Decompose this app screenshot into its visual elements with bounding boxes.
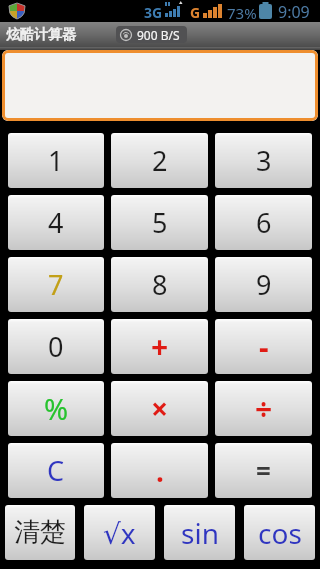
staticText: 9:09 [278, 1, 310, 23]
staticText: 清楚 [14, 516, 66, 549]
staticText: 73% [227, 3, 257, 23]
staticText: ÷ [255, 388, 273, 429]
button[interactable]: . [111, 443, 208, 498]
button[interactable]: ÷ [215, 381, 312, 436]
staticText: √x [103, 514, 136, 552]
staticText: cos [258, 514, 302, 552]
staticText: - [259, 326, 269, 367]
button[interactable]: 0 [8, 319, 104, 374]
staticText: 4 [48, 204, 64, 241]
staticText: % [44, 389, 69, 428]
staticText: 炫酷计算器 [6, 26, 76, 44]
button[interactable]: 900 B/S [116, 26, 187, 43]
button[interactable]: 4 [8, 195, 104, 250]
staticText: C [47, 452, 65, 489]
staticText: 0 [48, 328, 64, 365]
button[interactable]: 6 [215, 195, 312, 250]
button[interactable]: C [8, 443, 104, 498]
staticText: = [256, 453, 271, 488]
button[interactable]: % [8, 381, 104, 436]
staticText: 2 [152, 142, 168, 179]
staticText: 6 [256, 204, 272, 241]
button[interactable]: cos [244, 505, 315, 560]
staticText: sin [181, 514, 219, 552]
button[interactable]: √x [84, 505, 155, 560]
button[interactable]: 9 [215, 257, 312, 312]
staticText: 3G [144, 3, 163, 22]
staticText: + [151, 326, 169, 367]
staticText: G [190, 3, 201, 22]
staticText: 1 [48, 142, 64, 179]
staticText: 900 B/S [137, 27, 180, 43]
button[interactable]: + [111, 319, 208, 374]
button[interactable]: 8 [111, 257, 208, 312]
button[interactable]: 2 [111, 133, 208, 188]
button[interactable]: 清楚 [5, 505, 75, 560]
staticText: 3 [256, 142, 272, 179]
button[interactable]: 7 [8, 257, 104, 312]
staticText: 8 [152, 266, 168, 303]
staticText: 9 [256, 266, 272, 303]
button[interactable]: 1 [8, 133, 104, 188]
button[interactable]: × [111, 381, 208, 436]
button[interactable]: - [215, 319, 312, 374]
button[interactable]: = [215, 443, 312, 498]
staticText: 5 [152, 204, 168, 241]
staticText: × [151, 388, 169, 429]
button[interactable]: sin [164, 505, 235, 560]
staticText: 7 [48, 266, 64, 303]
button[interactable]: 3 [215, 133, 312, 188]
button[interactable]: 5 [111, 195, 208, 250]
staticText: . [156, 452, 164, 490]
